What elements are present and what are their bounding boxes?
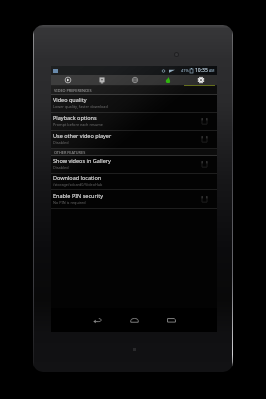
staticText: VIDEO PREFERENCES — [54, 88, 92, 93]
staticText: Prompt before each resume — [53, 122, 103, 127]
button[interactable]: Video quality — [51, 95, 217, 113]
staticText: Video quality — [53, 96, 87, 103]
button[interactable]: Explore — [118, 75, 151, 85]
staticText: /storage/sdcard0/VideoHub — [53, 182, 103, 187]
button[interactable]: Enable PIN security — [51, 191, 217, 209]
staticText: Use other video player — [53, 132, 112, 139]
button[interactable]: Show videos in Gallery — [51, 156, 217, 174]
staticText: OTHER FEATURES — [54, 150, 86, 155]
button[interactable]: Home — [127, 314, 141, 326]
staticText: Disabled — [53, 140, 69, 145]
button[interactable]: Videos — [51, 75, 85, 85]
staticText: 10:35 — [195, 67, 208, 74]
staticText: Show videos in Gallery — [53, 157, 111, 164]
button[interactable]: Settings — [184, 75, 217, 85]
button[interactable]: Back — [90, 314, 104, 326]
button[interactable]: Download location — [51, 173, 217, 190]
button[interactable]: Playback options — [51, 113, 217, 131]
staticText: 41% — [181, 68, 189, 73]
button[interactable]: Library — [85, 75, 118, 85]
button[interactable]: Trending — [151, 75, 184, 85]
staticText: Playback options — [53, 114, 97, 121]
button[interactable]: Recent apps — [164, 314, 178, 326]
staticText: Disabled — [53, 165, 69, 170]
staticText: Download location — [53, 174, 102, 181]
staticText: Enable PIN security — [53, 192, 103, 199]
staticText: No PIN is required — [53, 200, 86, 205]
staticText: AM — [209, 68, 215, 73]
staticText: Lower quality, faster download — [53, 104, 108, 109]
button[interactable]: Use other video player — [51, 131, 217, 149]
